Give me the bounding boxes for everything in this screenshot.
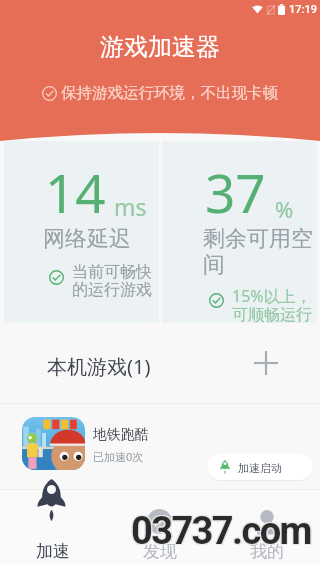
staticText: 网络延迟	[43, 225, 131, 253]
staticText: 加速启动	[238, 461, 282, 475]
staticText: 03737.com	[130, 509, 310, 554]
button[interactable]: 我的	[213, 479, 320, 564]
button[interactable]: 加速启动	[207, 454, 313, 480]
staticText: ms	[114, 191, 147, 222]
staticText: 游戏加速器	[100, 32, 220, 62]
button[interactable]: 14	[4, 141, 159, 323]
staticText: 37	[205, 156, 266, 228]
staticText: 03737.com	[131, 510, 311, 555]
button[interactable]: 37	[162, 141, 317, 323]
staticText: 03737.com	[132, 508, 312, 553]
button[interactable]: 地铁跑酷	[0, 404, 320, 491]
staticText: 当前可畅快 的运行游戏	[72, 262, 152, 300]
button[interactable]: 发现	[106, 479, 213, 564]
staticText: 地铁跑酷	[93, 426, 149, 444]
staticText: 03737.com	[131, 509, 311, 554]
button[interactable]: Add game	[248, 345, 284, 381]
staticText: 已加速0次	[93, 449, 144, 464]
button[interactable]: 加速	[0, 479, 106, 564]
staticText: 我的	[250, 541, 284, 562]
staticText: 03737.com	[132, 509, 312, 554]
staticText: 加速	[36, 541, 70, 562]
staticText: 03737.com	[131, 508, 311, 553]
staticText: 保持游戏运行环境，不出现卡顿	[61, 83, 278, 103]
staticText: %	[275, 194, 294, 224]
staticText: 03737.com	[132, 510, 312, 555]
staticText: 发现	[143, 541, 177, 562]
staticText: 15%以上， 可顺畅运行	[232, 285, 312, 323]
staticText: 03737.com	[130, 510, 310, 555]
staticText: 14	[45, 156, 106, 228]
staticText: 17:19	[289, 3, 317, 16]
staticText: 本机游戏(1)	[47, 353, 151, 380]
staticText: 剩余可用空间	[203, 225, 315, 278]
staticText: 03737.com	[130, 508, 310, 553]
